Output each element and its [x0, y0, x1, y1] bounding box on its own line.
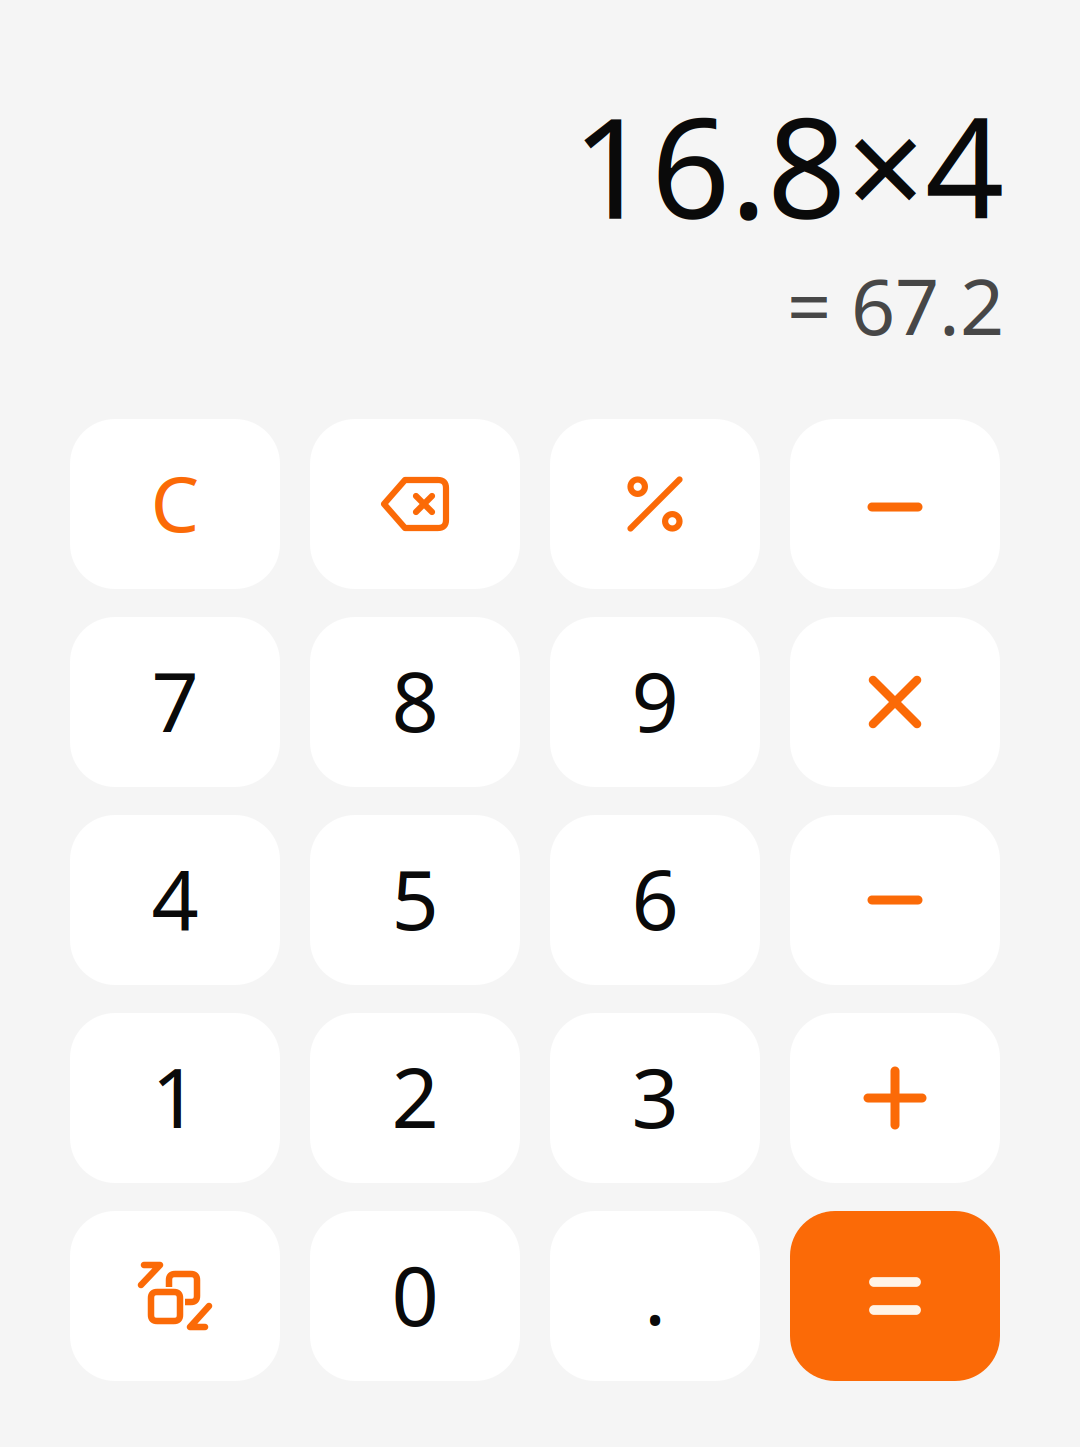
button[interactable]: 3	[550, 1013, 760, 1183]
button[interactable]: 8	[310, 617, 520, 787]
button[interactable]: C	[70, 419, 280, 589]
staticText: 4	[151, 843, 198, 953]
staticText: 16.8×4	[572, 73, 1004, 257]
button[interactable]: 4	[70, 815, 280, 985]
button[interactable]: 2	[310, 1013, 520, 1183]
button[interactable]: Unit conversion	[70, 1211, 280, 1381]
staticText: 2	[391, 1041, 438, 1151]
staticText: 5	[391, 843, 438, 953]
staticText: = 67.2	[787, 254, 1004, 356]
staticText: 3	[631, 1041, 678, 1151]
button[interactable]: Minus	[790, 815, 1000, 985]
staticText: C	[150, 451, 199, 553]
button[interactable]: Divide	[790, 419, 1000, 589]
button[interactable]: Equals	[790, 1211, 1000, 1381]
staticText: .	[644, 1238, 666, 1348]
staticText: 1	[151, 1041, 198, 1151]
button[interactable]: Percent	[550, 419, 760, 589]
staticText: 0	[391, 1239, 438, 1349]
button[interactable]: 6	[550, 815, 760, 985]
button[interactable]: 0	[310, 1211, 520, 1381]
staticText: 7	[151, 645, 198, 755]
button[interactable]: 7	[70, 617, 280, 787]
button[interactable]: 5	[310, 815, 520, 985]
button[interactable]: Multiply	[790, 617, 1000, 787]
button[interactable]: Plus	[790, 1013, 1000, 1183]
staticText: 8	[391, 645, 438, 755]
button[interactable]: Backspace	[310, 419, 520, 589]
staticText: 9	[631, 645, 678, 755]
button[interactable]: 9	[550, 617, 760, 787]
staticText: 6	[631, 843, 678, 953]
button[interactable]: .	[550, 1211, 760, 1381]
button[interactable]: 1	[70, 1013, 280, 1183]
